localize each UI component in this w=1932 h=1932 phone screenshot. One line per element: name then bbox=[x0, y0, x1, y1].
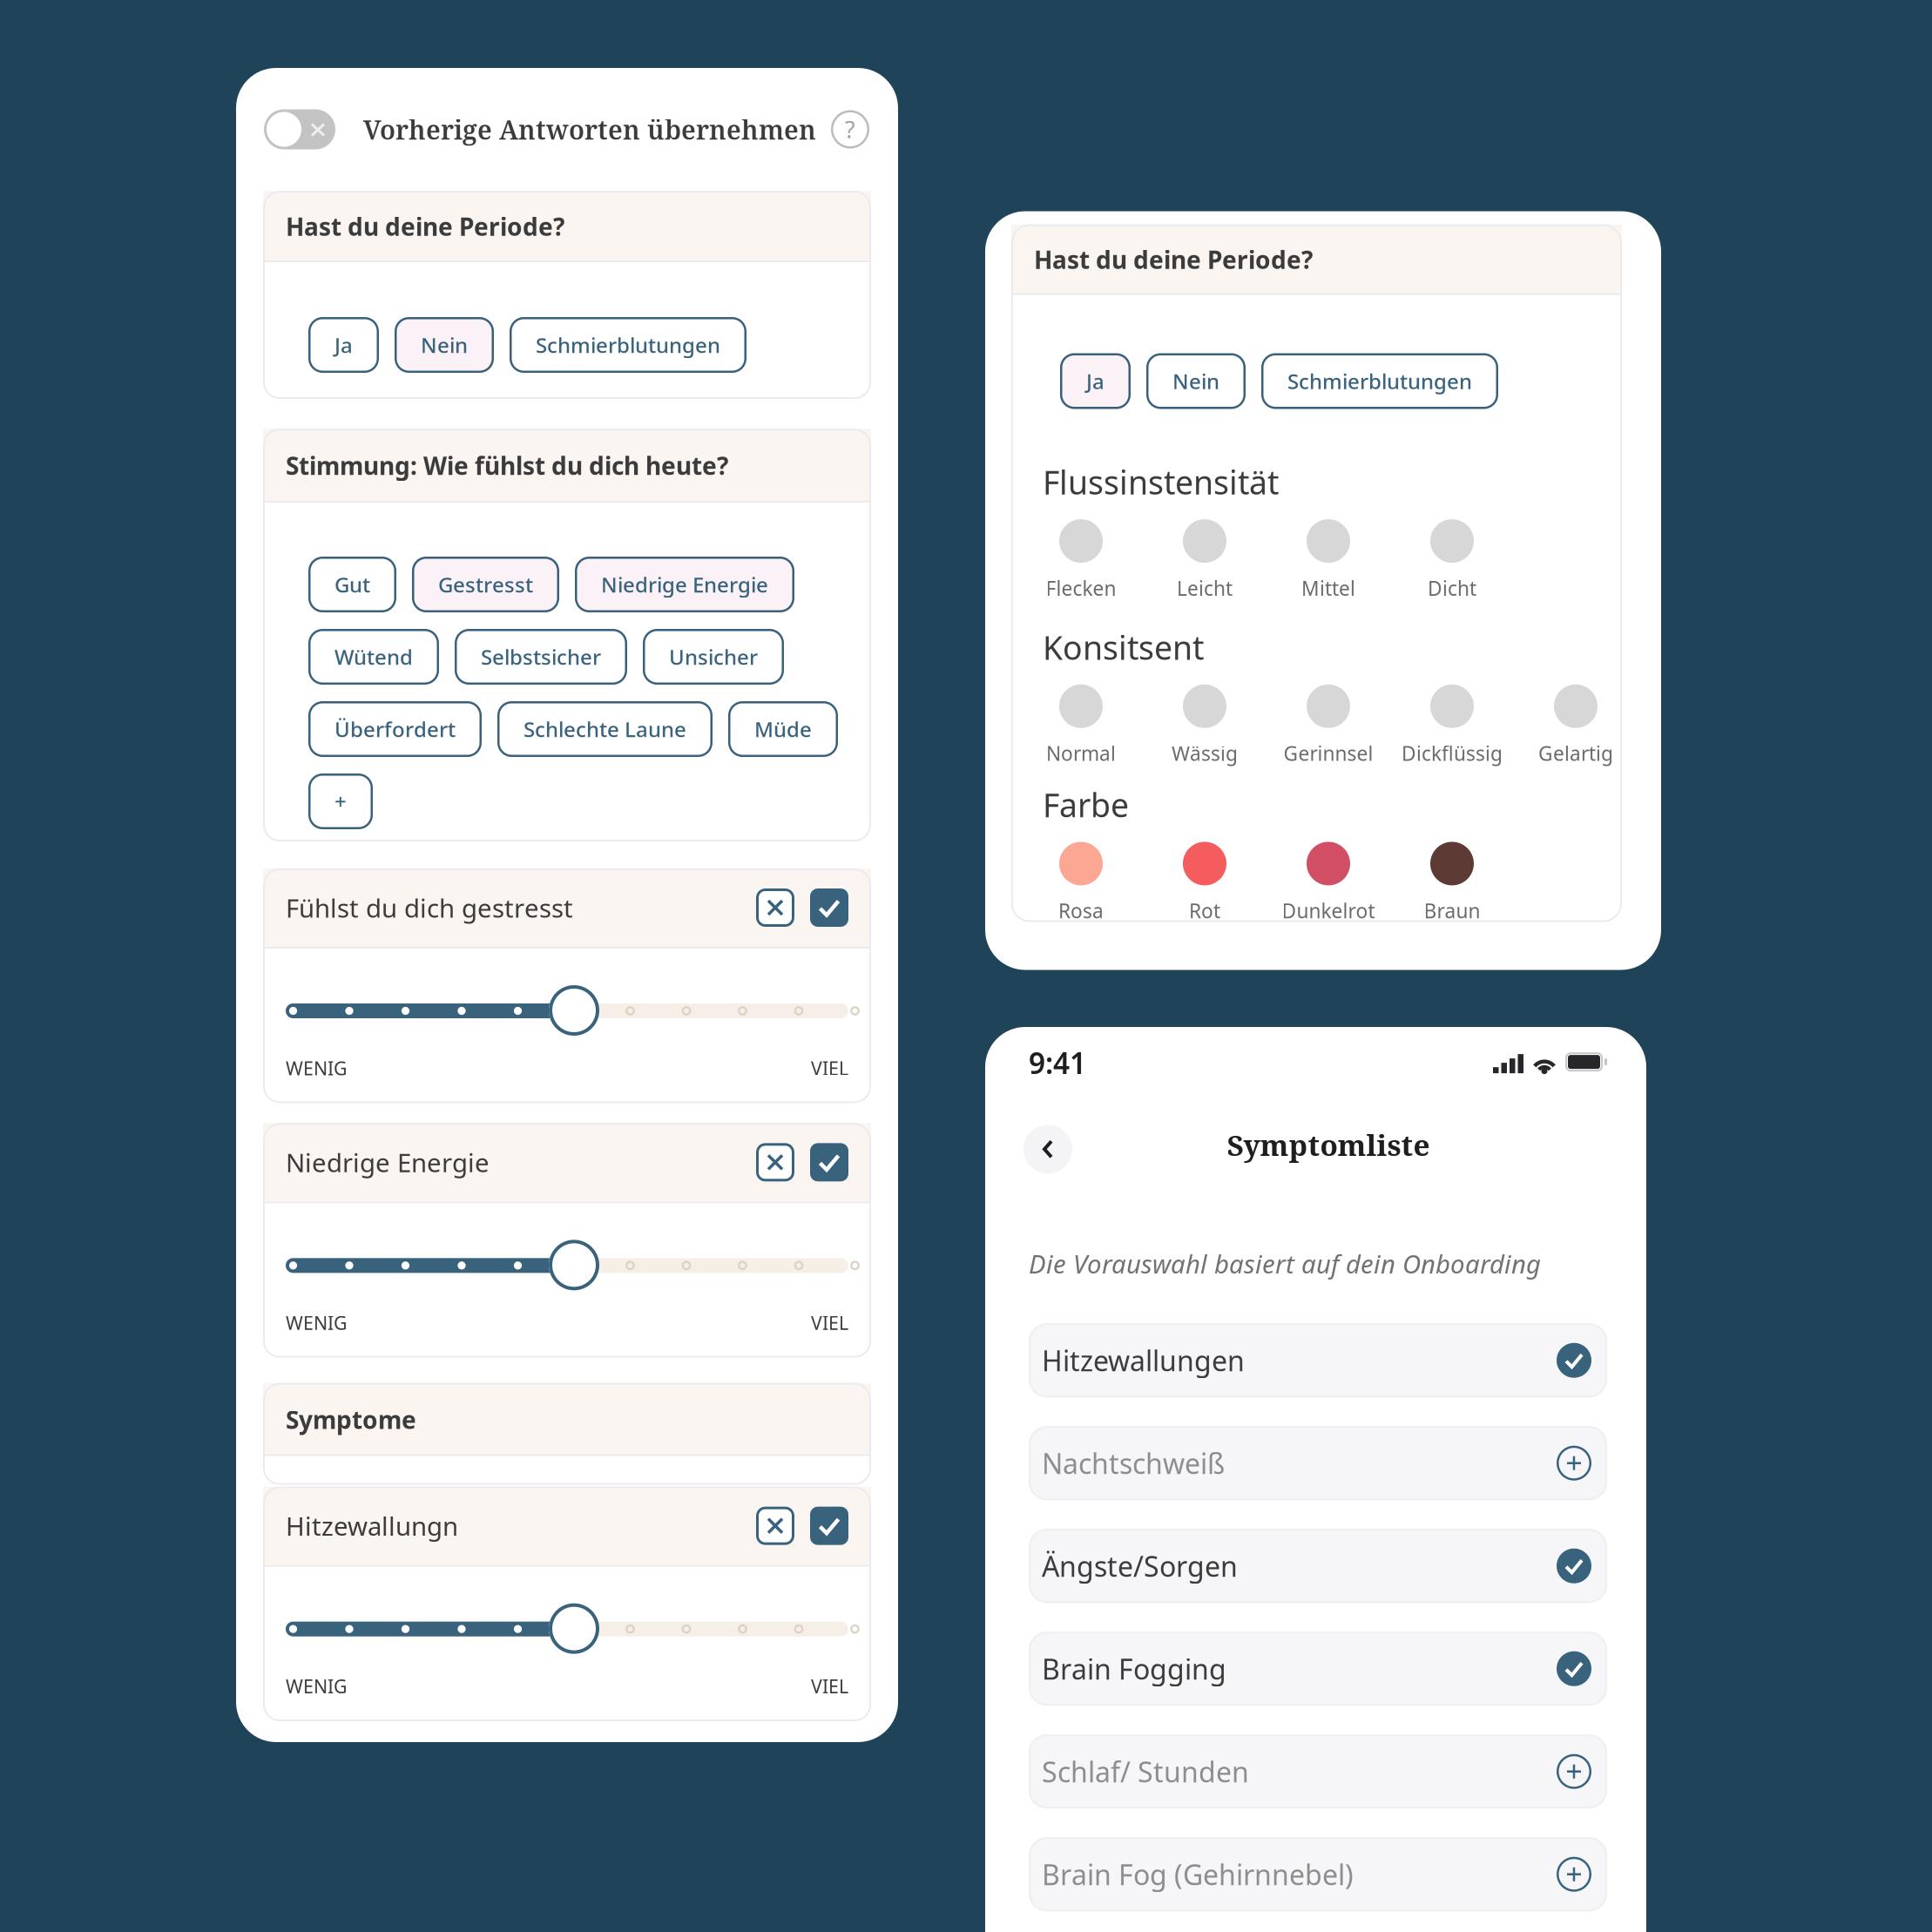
staticText: Wütend bbox=[334, 643, 413, 671]
staticText: Müde bbox=[754, 715, 812, 743]
staticText: Symptome bbox=[286, 1403, 416, 1436]
button[interactable]: Leicht bbox=[1143, 519, 1267, 601]
button[interactable]: Müde bbox=[728, 701, 838, 757]
staticText: Konsitsent bbox=[1043, 626, 1204, 669]
staticText: Rosa bbox=[1058, 898, 1104, 924]
staticText: Stimmung: Wie fühlst du dich heute? bbox=[286, 449, 728, 482]
staticText: 9:41 bbox=[1029, 1044, 1086, 1082]
staticText: Hast du deine Periode? bbox=[286, 210, 564, 243]
button[interactable]: Hilfe bbox=[831, 110, 869, 149]
button[interactable]: Nein bbox=[395, 317, 494, 373]
staticText: Gut bbox=[334, 571, 370, 598]
button[interactable]: Ablehnen bbox=[756, 1143, 794, 1181]
button[interactable]: Gut bbox=[308, 557, 396, 612]
staticText: Ängste/Sorgen bbox=[1042, 1547, 1238, 1584]
button[interactable]: Unsicher bbox=[643, 629, 784, 685]
staticText: Mittel bbox=[1301, 575, 1355, 601]
button[interactable]: Niedrige Energie bbox=[575, 557, 794, 612]
staticText: Schlaf/ Stunden bbox=[1042, 1753, 1249, 1790]
button[interactable]: Rosa bbox=[1019, 842, 1143, 924]
button[interactable]: Rot bbox=[1143, 842, 1267, 924]
button[interactable]: Nachtschweiß bbox=[1029, 1426, 1607, 1500]
button[interactable]: Hitzewallungen bbox=[1029, 1323, 1607, 1397]
button[interactable]: Dicht bbox=[1390, 519, 1514, 601]
button[interactable]: Gelartig bbox=[1514, 684, 1638, 766]
staticText: Niedrige Energie bbox=[286, 1145, 490, 1179]
staticText: Schmierblutungen bbox=[1287, 367, 1472, 395]
button[interactable]: Nein bbox=[1146, 353, 1246, 409]
button[interactable]: Brain Fogging bbox=[1029, 1632, 1607, 1706]
staticText: + bbox=[334, 788, 347, 815]
staticText: Schlechte Laune bbox=[524, 715, 686, 743]
button[interactable]: Braun bbox=[1390, 842, 1514, 924]
staticText: Dickflüssig bbox=[1402, 740, 1503, 766]
staticText: Niedrige Energie bbox=[601, 571, 768, 598]
button[interactable]: Gerinnsel bbox=[1267, 684, 1390, 766]
button[interactable]: Wütend bbox=[308, 629, 439, 685]
staticText: Gelartig bbox=[1538, 740, 1613, 766]
button[interactable]: Vorherige Antworten übernehmen bbox=[264, 109, 335, 149]
button[interactable]: + bbox=[308, 773, 373, 829]
button[interactable]: Ablehnen bbox=[756, 1507, 794, 1545]
staticText: VIEL bbox=[811, 1056, 848, 1080]
staticText: Die Vorauswahl basiert auf dein Onboardi… bbox=[1029, 1247, 1541, 1281]
button[interactable]: Ja bbox=[1060, 353, 1131, 409]
staticText: Symptomliste bbox=[1227, 1125, 1430, 1164]
button[interactable]: Dunkelrot bbox=[1267, 842, 1390, 924]
staticText: Vorherige Antworten übernehmen bbox=[363, 112, 816, 147]
staticText: Gestresst bbox=[438, 571, 533, 598]
button[interactable]: Schlechte Laune bbox=[497, 701, 713, 757]
staticText: Schmierblutungen bbox=[536, 331, 720, 359]
button[interactable]: Zurück bbox=[1023, 1125, 1072, 1174]
staticText: Fühlst du dich gestresst bbox=[286, 891, 573, 925]
staticText: Flecken bbox=[1046, 575, 1116, 601]
button[interactable]: Selbstsicher bbox=[455, 629, 627, 685]
staticText: Nachtschweiß bbox=[1042, 1445, 1225, 1482]
staticText: VIEL bbox=[811, 1310, 848, 1335]
staticText: Farbe bbox=[1043, 783, 1129, 826]
button[interactable]: Ja bbox=[308, 317, 379, 373]
staticText: Normal bbox=[1046, 740, 1116, 766]
staticText: Brain Fogging bbox=[1042, 1650, 1226, 1687]
staticText: Gerinnsel bbox=[1283, 740, 1373, 766]
staticText: Rot bbox=[1189, 898, 1220, 924]
staticText: Ja bbox=[1086, 367, 1104, 395]
staticText: VIEL bbox=[811, 1674, 848, 1699]
staticText: ? bbox=[845, 114, 855, 145]
button[interactable]: Bestätigen bbox=[794, 1143, 848, 1181]
button[interactable]: Schlaf/ Stunden bbox=[1029, 1734, 1607, 1808]
button[interactable]: Flecken bbox=[1019, 519, 1143, 601]
staticText: Hitzewallungn bbox=[286, 1509, 458, 1543]
staticText: Unsicher bbox=[669, 643, 758, 671]
staticText: Hast du deine Periode? bbox=[1034, 243, 1313, 276]
staticText: WENIG bbox=[286, 1056, 348, 1080]
button[interactable]: Mittel bbox=[1267, 519, 1390, 601]
staticText: Dunkelrot bbox=[1282, 898, 1375, 924]
button[interactable]: Schmierblutungen bbox=[510, 317, 746, 373]
button[interactable]: Wässig bbox=[1143, 684, 1267, 766]
staticText: WENIG bbox=[286, 1310, 348, 1335]
staticText: Brain Fog (Gehirnnebel) bbox=[1042, 1856, 1354, 1893]
staticText: Hitzewallungen bbox=[1042, 1342, 1245, 1379]
button[interactable]: Brain Fog (Gehirnnebel) bbox=[1029, 1837, 1607, 1911]
staticText: Wässig bbox=[1172, 740, 1238, 766]
button[interactable]: Normal bbox=[1019, 684, 1143, 766]
staticText: Ja bbox=[334, 331, 353, 359]
button[interactable]: Gestresst bbox=[412, 557, 559, 612]
button[interactable]: Dickflüssig bbox=[1390, 684, 1514, 766]
button[interactable]: Bestätigen bbox=[794, 1507, 848, 1545]
staticText: Leicht bbox=[1177, 575, 1233, 601]
staticText: Nein bbox=[421, 331, 468, 359]
staticText: Selbstsicher bbox=[481, 643, 601, 671]
button[interactable]: Bestätigen bbox=[794, 888, 848, 927]
staticText: Überfordert bbox=[334, 715, 456, 743]
staticText: Nein bbox=[1172, 367, 1219, 395]
staticText: Dicht bbox=[1428, 575, 1476, 601]
staticText: WENIG bbox=[286, 1674, 348, 1699]
button[interactable]: Überfordert bbox=[308, 701, 482, 757]
staticText: Braun bbox=[1424, 898, 1480, 924]
button[interactable]: Ablehnen bbox=[756, 888, 794, 927]
button[interactable]: Schmierblutungen bbox=[1261, 353, 1498, 409]
staticText: Flussinstensität bbox=[1043, 460, 1279, 504]
button[interactable]: Ängste/Sorgen bbox=[1029, 1529, 1607, 1603]
